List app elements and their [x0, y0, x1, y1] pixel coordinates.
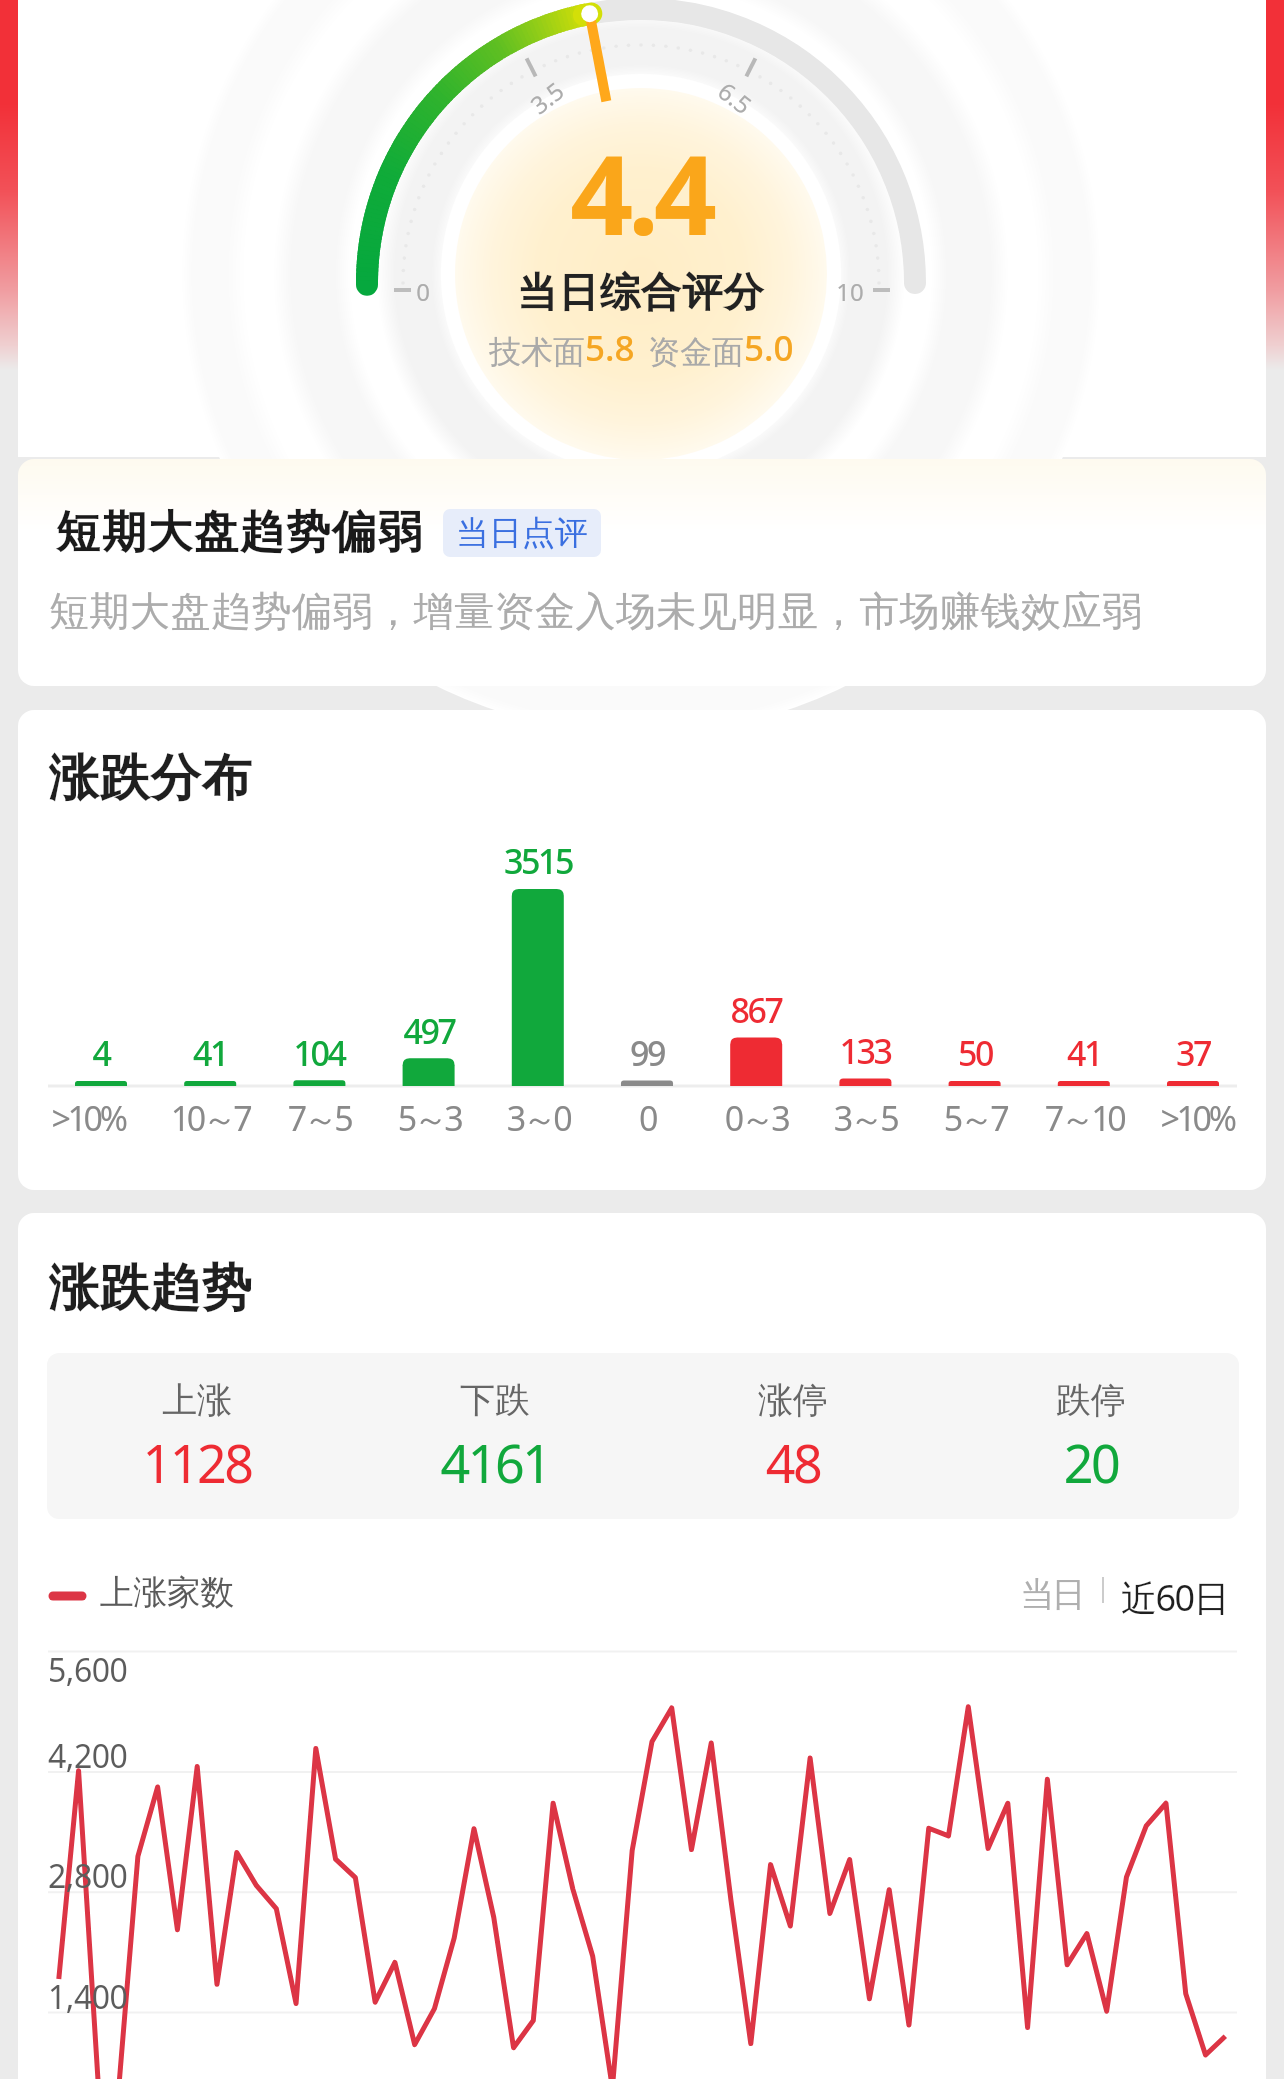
staticText: 41	[834, 1030, 1266, 1076]
staticText: 48	[543, 1427, 1043, 1498]
staticText: 上涨家数	[100, 1571, 234, 1614]
staticText: 短期大盘趋势偏弱，增量资金入场未见明显，市场赚钱效应弱	[49, 586, 1143, 636]
staticText: 下跌	[245, 1378, 745, 1422]
staticText: 6.5	[694, 60, 777, 135]
button[interactable]: 涨跌分布	[18, 710, 1266, 1190]
staticText: 涨跌分布	[48, 747, 252, 810]
staticText: 867	[506, 987, 1006, 1033]
staticText: 5,600	[48, 1648, 128, 1692]
button[interactable]: 近60日	[1111, 1567, 1239, 1628]
staticText: 0	[173, 275, 673, 308]
staticText: 99	[397, 1030, 897, 1076]
staticText: 资金面	[648, 332, 744, 372]
staticText: 4,200	[48, 1734, 128, 1778]
staticText: 5.8	[585, 324, 635, 372]
staticText: 3～0	[288, 1095, 788, 1141]
staticText: 10	[600, 275, 1100, 308]
staticText: 当日	[1022, 1573, 1084, 1616]
staticText: 7～10	[834, 1095, 1266, 1141]
button[interactable]: 涨跌趋势	[18, 1213, 1266, 2079]
staticText: 近60日	[1121, 1573, 1229, 1622]
staticText: 3.5	[505, 60, 588, 135]
staticText: 技术面	[489, 332, 585, 372]
staticText: 上涨	[18, 1378, 447, 1422]
staticText: 1,400	[48, 1975, 128, 2019]
staticText: 3～5	[615, 1095, 1115, 1141]
staticText: 跌停	[841, 1378, 1266, 1422]
staticText: 4161	[245, 1427, 745, 1498]
staticText: 1128	[18, 1427, 447, 1498]
button[interactable]: 当日	[1012, 1567, 1094, 1622]
staticText: 0～3	[506, 1095, 1006, 1141]
staticText: 0	[397, 1095, 897, 1141]
button[interactable]: 短期大盘趋势偏弱	[18, 459, 1266, 686]
staticText: 50	[725, 1030, 1225, 1076]
staticText: 5～7	[725, 1095, 1225, 1141]
staticText: 4	[18, 1030, 351, 1076]
staticText: >10%	[18, 1095, 338, 1141]
staticText: 4.4	[391, 117, 891, 267]
staticText: 涨跌趋势	[48, 1257, 252, 1320]
staticText: 涨停	[543, 1378, 1043, 1422]
staticText: 37	[943, 1030, 1266, 1076]
staticText: 5.0	[744, 324, 794, 372]
staticText: 10～7	[18, 1095, 460, 1141]
staticText: 133	[615, 1028, 1115, 1074]
staticText: 3515	[288, 838, 788, 884]
staticText: 20	[841, 1427, 1266, 1498]
staticText: 2,800	[48, 1854, 128, 1898]
staticText: 104	[69, 1030, 569, 1076]
staticText: 5～3	[179, 1095, 679, 1141]
staticText: 41	[18, 1030, 460, 1076]
staticText: 当日综合评分	[391, 267, 891, 317]
staticText: 497	[179, 1008, 679, 1054]
button[interactable]: 当日综合评分 4.4	[18, 0, 1266, 457]
staticText: 短期大盘趋势偏弱	[55, 505, 423, 560]
staticText: 当日点评	[456, 512, 588, 554]
staticText: >10%	[947, 1095, 1266, 1141]
staticText: 7～5	[69, 1095, 569, 1141]
